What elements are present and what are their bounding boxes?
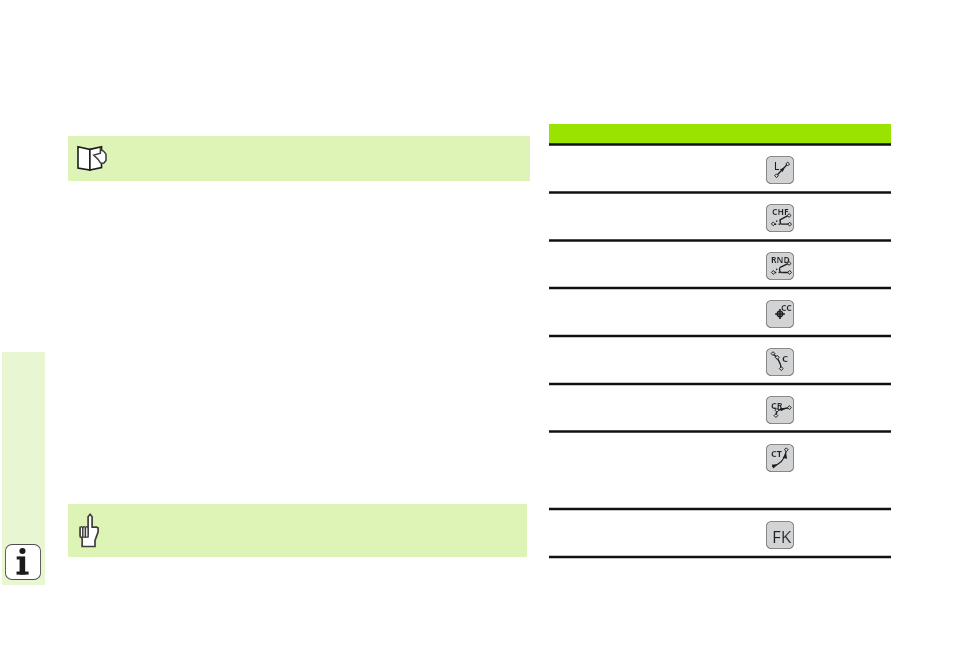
- staticText: FK: [772, 525, 792, 548]
- button[interactable]: FK: [766, 521, 794, 549]
- button[interactable]: RND: [766, 252, 794, 280]
- staticText: CHF: [772, 206, 789, 218]
- button[interactable]: Information: [5, 544, 41, 580]
- button[interactable]: L: [766, 156, 794, 184]
- button[interactable]: Table header: [549, 124, 891, 144]
- button[interactable]: CT: [766, 444, 794, 472]
- button[interactable]: CHF: [766, 204, 794, 232]
- button[interactable]: Chapter tab: [2, 352, 45, 585]
- button[interactable]: C: [766, 348, 794, 376]
- button[interactable]: CR: [766, 396, 794, 424]
- staticText: RND: [771, 254, 790, 266]
- staticText: CC: [781, 302, 792, 314]
- staticText: CR: [771, 399, 783, 411]
- staticText: L: [774, 159, 780, 173]
- button[interactable]: CC: [766, 300, 794, 328]
- staticText: C: [782, 352, 789, 365]
- staticText: CT: [771, 447, 782, 459]
